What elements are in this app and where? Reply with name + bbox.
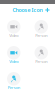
staticText: Video [9, 59, 18, 64]
staticText: Person [35, 33, 47, 38]
staticText: Choose Icon [12, 6, 42, 14]
button[interactable]: Video [0, 46, 27, 63]
button[interactable]: Person [0, 72, 27, 89]
button[interactable]: Person [27, 20, 55, 37]
button[interactable]: Person [27, 46, 55, 63]
staticText: Video [9, 33, 18, 38]
staticText: Person [8, 85, 20, 90]
staticText: Person [35, 59, 47, 64]
button[interactable]: Video [0, 20, 27, 37]
button[interactable]: Add [44, 6, 51, 14]
